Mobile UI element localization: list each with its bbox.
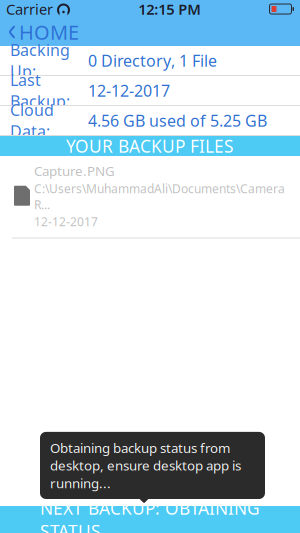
staticText: NEXT BACKUP: OBTAINING STATUS... bbox=[40, 496, 260, 533]
button[interactable]: Capture.PNG bbox=[0, 156, 300, 238]
button[interactable]: NEXT BACKUP: OBTAINING STATUS... bbox=[0, 506, 300, 533]
staticText: 12-12-2017 bbox=[88, 80, 170, 101]
staticText: 12:15 PM bbox=[138, 0, 201, 19]
staticText: Backing Up: bbox=[10, 39, 70, 82]
staticText: 4.56 GB used of 5.25 GB bbox=[88, 110, 267, 131]
staticText: 0 Directory, 1 File bbox=[88, 50, 217, 71]
staticText: Last Backup: bbox=[10, 69, 70, 112]
staticText: Carrier bbox=[6, 0, 53, 19]
staticText: 12-12-2017 bbox=[34, 214, 98, 229]
staticText: Capture.PNG bbox=[34, 162, 115, 180]
staticText: Obtaining backup status from desktop, en… bbox=[50, 439, 241, 492]
staticText: C:\Users\MuhammadAli\Documents\Camera R.… bbox=[34, 181, 285, 213]
button[interactable]: HOME bbox=[0, 15, 89, 49]
staticText: Cloud Data: bbox=[10, 99, 54, 142]
staticText: YOUR BACKUP FILES bbox=[66, 134, 234, 157]
staticText: HOME bbox=[19, 19, 79, 45]
